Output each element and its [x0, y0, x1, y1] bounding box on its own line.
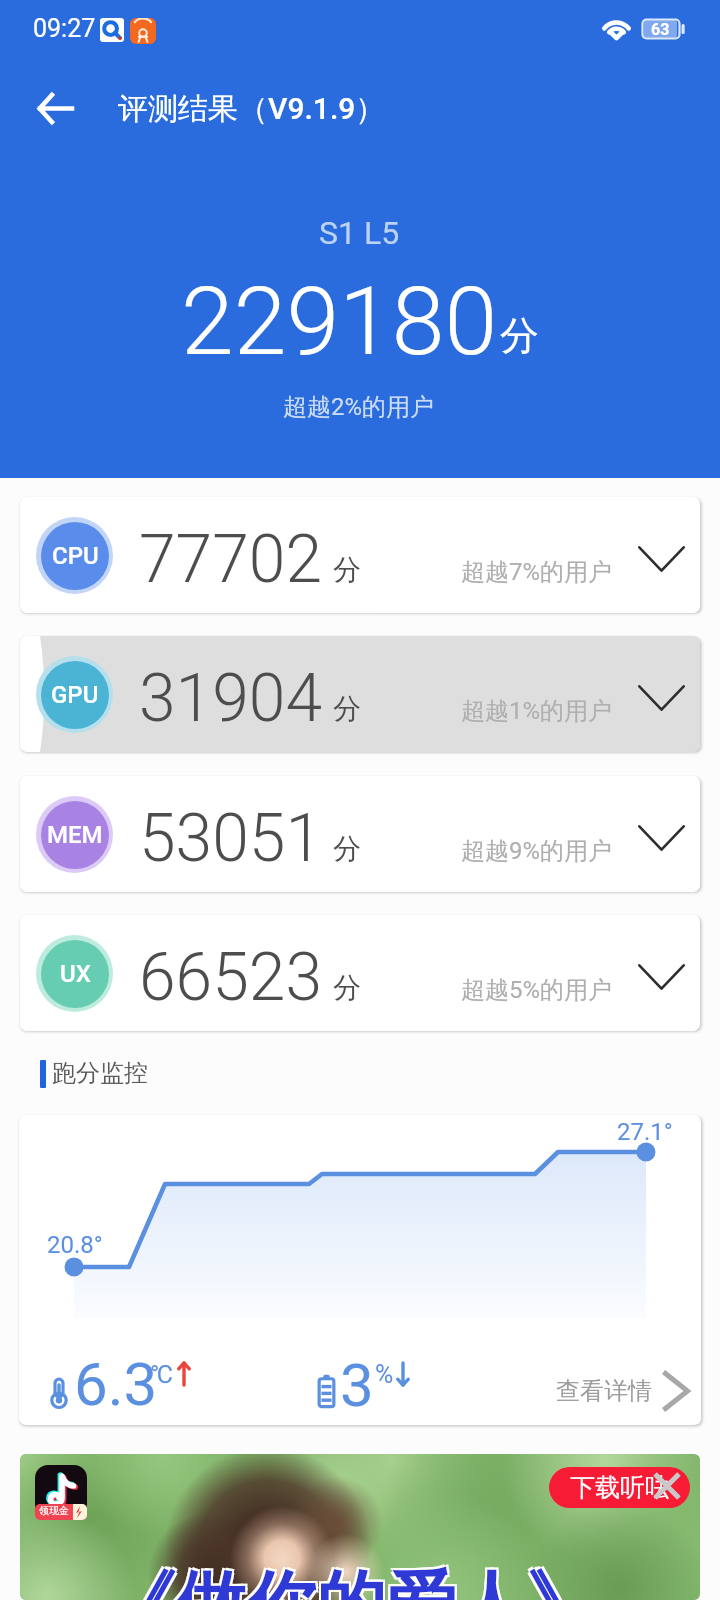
staticText: 229180: [181, 266, 498, 377]
button[interactable]: CPU: [20, 497, 700, 613]
staticText: 27.1°: [617, 1118, 673, 1146]
staticText: 分: [333, 552, 361, 587]
staticText: 《做你的爱人》: [106, 1561, 596, 1600]
staticText: 分: [333, 691, 361, 726]
staticText: 53051: [139, 800, 323, 877]
staticText: 66523: [139, 939, 323, 1016]
staticText: 领现金: [39, 1504, 69, 1517]
staticText: 超越5%的用户: [461, 975, 613, 1005]
staticText: ℃: [151, 1360, 173, 1389]
staticText: 跑分监控: [52, 1058, 148, 1088]
staticText: 6.3: [74, 1349, 158, 1419]
staticText: S1 L5: [319, 214, 400, 252]
staticText: 《做你的爱人》: [108, 1563, 598, 1600]
staticText: 分: [500, 311, 539, 360]
button[interactable]: 查看详情: [546, 1360, 700, 1422]
staticText: 超越7%的用户: [461, 557, 613, 587]
staticText: 查看详情: [556, 1376, 652, 1406]
staticText: 评测结果（V9.1.9）: [118, 90, 386, 128]
staticText: 分: [333, 831, 361, 866]
staticText: 超越9%的用户: [461, 836, 613, 866]
staticText: 63: [651, 20, 670, 39]
button[interactable]: GPU: [20, 636, 700, 752]
staticText: 《做你的爱人》: [104, 1563, 594, 1600]
staticText: MEM: [47, 821, 103, 849]
staticText: 3: [340, 1350, 374, 1420]
button[interactable]: MEM: [20, 776, 700, 892]
staticText: %: [375, 1360, 394, 1389]
staticText: 《做你的爱人》: [108, 1559, 598, 1600]
button[interactable]: UX: [20, 915, 700, 1031]
button[interactable]: 下载听呿: [549, 1467, 690, 1508]
staticText: 分: [333, 970, 361, 1005]
staticText: 77702: [139, 521, 323, 598]
button[interactable]: Back: [24, 76, 88, 140]
staticText: UX: [60, 960, 91, 988]
button[interactable]: 领现金: [20, 1454, 700, 1600]
staticText: 超越2%的用户: [283, 392, 435, 422]
other: Close ad: [653, 1472, 681, 1500]
staticText: 《做你的爱人》: [104, 1559, 594, 1600]
staticText: 31904: [139, 660, 323, 737]
staticText: 20.8°: [47, 1231, 103, 1259]
staticText: CPU: [52, 542, 99, 570]
staticText: 09:27: [33, 14, 96, 43]
staticText: GPU: [51, 681, 99, 709]
staticText: 下载听呿: [570, 1472, 670, 1503]
staticText: 超越1%的用户: [461, 696, 613, 726]
